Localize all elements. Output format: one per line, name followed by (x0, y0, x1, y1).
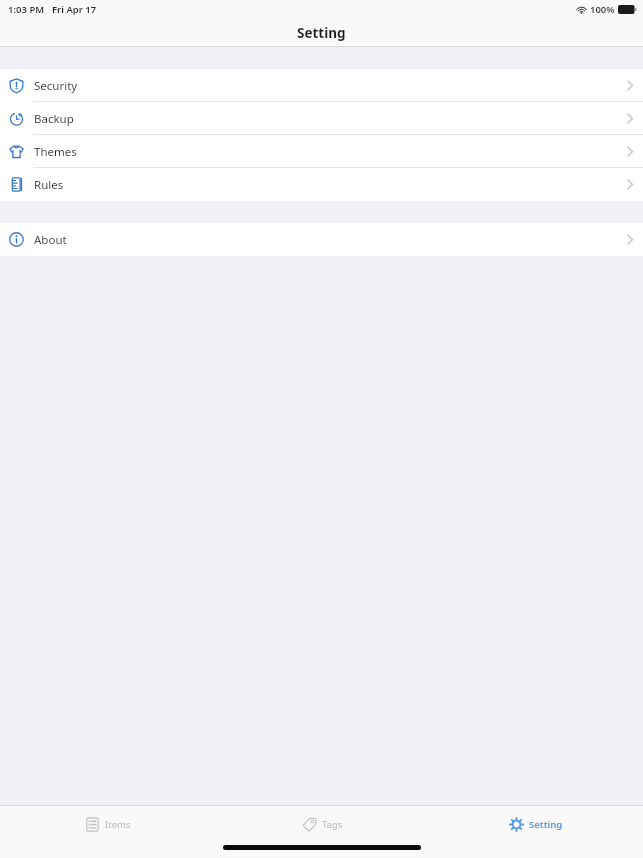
staticText: Themes (34, 144, 77, 160)
staticText: Tags (322, 818, 343, 831)
button[interactable]: Backup (0, 102, 643, 135)
button[interactable]: Items (0, 806, 215, 842)
staticText: Backup (34, 111, 74, 127)
staticText: Security (34, 78, 78, 94)
staticText: 100% (590, 3, 615, 16)
button[interactable]: Themes (0, 135, 643, 168)
button[interactable]: Security (0, 69, 643, 102)
button[interactable]: Rules (0, 168, 643, 201)
staticText: About (34, 232, 67, 248)
button[interactable]: Tags (215, 806, 429, 842)
staticText: Setting (297, 24, 346, 42)
staticText: Setting (529, 818, 563, 831)
staticText: Items (105, 818, 131, 831)
button[interactable]: About (0, 223, 643, 256)
button[interactable]: Setting (429, 806, 643, 842)
staticText: Fri Apr 17 (52, 3, 97, 16)
staticText: Rules (34, 177, 64, 193)
staticText: 1:03 PM (8, 3, 45, 16)
